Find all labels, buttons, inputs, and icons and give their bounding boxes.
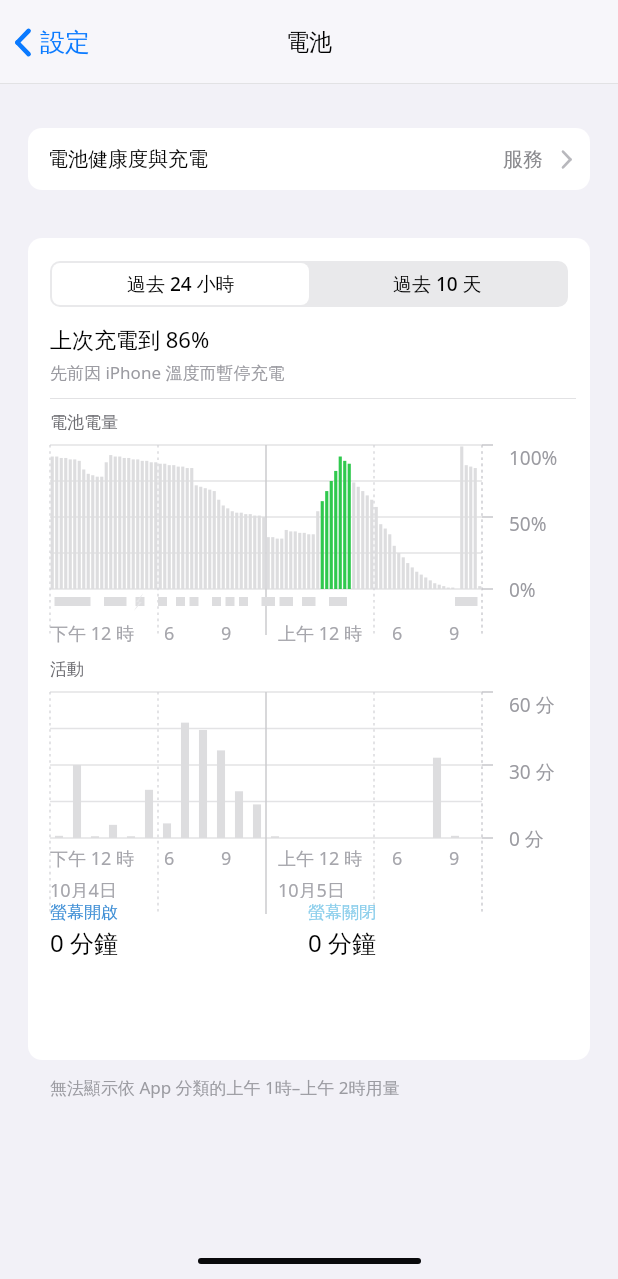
staticText: 上午 12 時 bbox=[278, 621, 392, 646]
button[interactable]: 電池健康度與充電 bbox=[28, 128, 590, 190]
button[interactable]: 過去 10 天 bbox=[309, 263, 566, 305]
staticText: 電池 bbox=[286, 28, 332, 57]
staticText: 0 分 bbox=[509, 826, 544, 852]
staticText: 服務 bbox=[503, 147, 543, 172]
staticText: 30 分 bbox=[509, 759, 555, 785]
staticText: 下午 12 時 bbox=[50, 846, 164, 871]
staticText: 上次充電到 86% bbox=[50, 324, 210, 354]
staticText: 無法顯示依 App 分類的上午 1時–上午 2時用量 bbox=[50, 1076, 400, 1099]
staticText: 0 分鐘 bbox=[308, 926, 376, 959]
staticText: 過去 24 小時 bbox=[127, 271, 235, 297]
staticText: 9 bbox=[221, 846, 278, 871]
staticText: 先前因 iPhone 溫度而暫停充電 bbox=[50, 361, 285, 384]
staticText: 活動 bbox=[50, 659, 84, 680]
staticText: 0% bbox=[509, 577, 536, 603]
staticText: 螢幕開啟 bbox=[50, 902, 118, 923]
staticText: 10月4日 bbox=[50, 878, 278, 898]
staticText: 0 分鐘 bbox=[50, 926, 118, 959]
staticText: 6 bbox=[392, 846, 449, 871]
staticText: 電池健康度與充電 bbox=[48, 147, 208, 172]
staticText: 設定 bbox=[40, 27, 90, 58]
staticText: 螢幕關閉 bbox=[308, 902, 376, 923]
staticText: 60 分 bbox=[509, 692, 555, 718]
staticText: 100% bbox=[509, 445, 558, 471]
staticText: 50% bbox=[509, 511, 547, 537]
staticText: 電池電量 bbox=[50, 412, 118, 433]
staticText: 上午 12 時 bbox=[278, 846, 392, 871]
staticText: 6 bbox=[164, 621, 221, 646]
button[interactable]: 過去 24 小時 bbox=[52, 263, 309, 305]
staticText: 過去 10 天 bbox=[393, 271, 482, 297]
staticText: 6 bbox=[392, 621, 449, 646]
staticText: 10月5日 bbox=[278, 878, 408, 898]
staticText: 9 bbox=[221, 621, 278, 646]
staticText: 下午 12 時 bbox=[50, 621, 164, 646]
staticText: 6 bbox=[164, 846, 221, 871]
button[interactable]: 設定 bbox=[10, 22, 95, 63]
